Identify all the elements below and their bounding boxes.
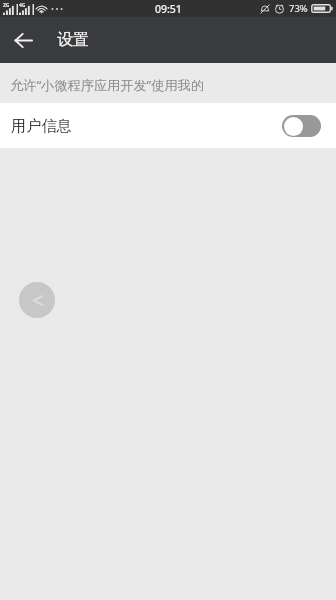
button[interactable]: 用户信息 xyxy=(0,103,336,148)
staticText: 73% xyxy=(289,2,308,15)
staticText: 4G xyxy=(19,2,26,9)
staticText: 2G xyxy=(3,2,10,9)
button[interactable]: Back xyxy=(0,17,46,63)
staticText: 用户信息 xyxy=(11,116,72,135)
staticText: 09:51 xyxy=(155,2,182,16)
staticText: 设置 xyxy=(57,30,89,50)
button[interactable]: User info toggle xyxy=(282,115,321,137)
button[interactable]: Go back xyxy=(19,282,55,318)
staticText: 允许“小微程序应用开发”使用我的 xyxy=(10,76,205,94)
